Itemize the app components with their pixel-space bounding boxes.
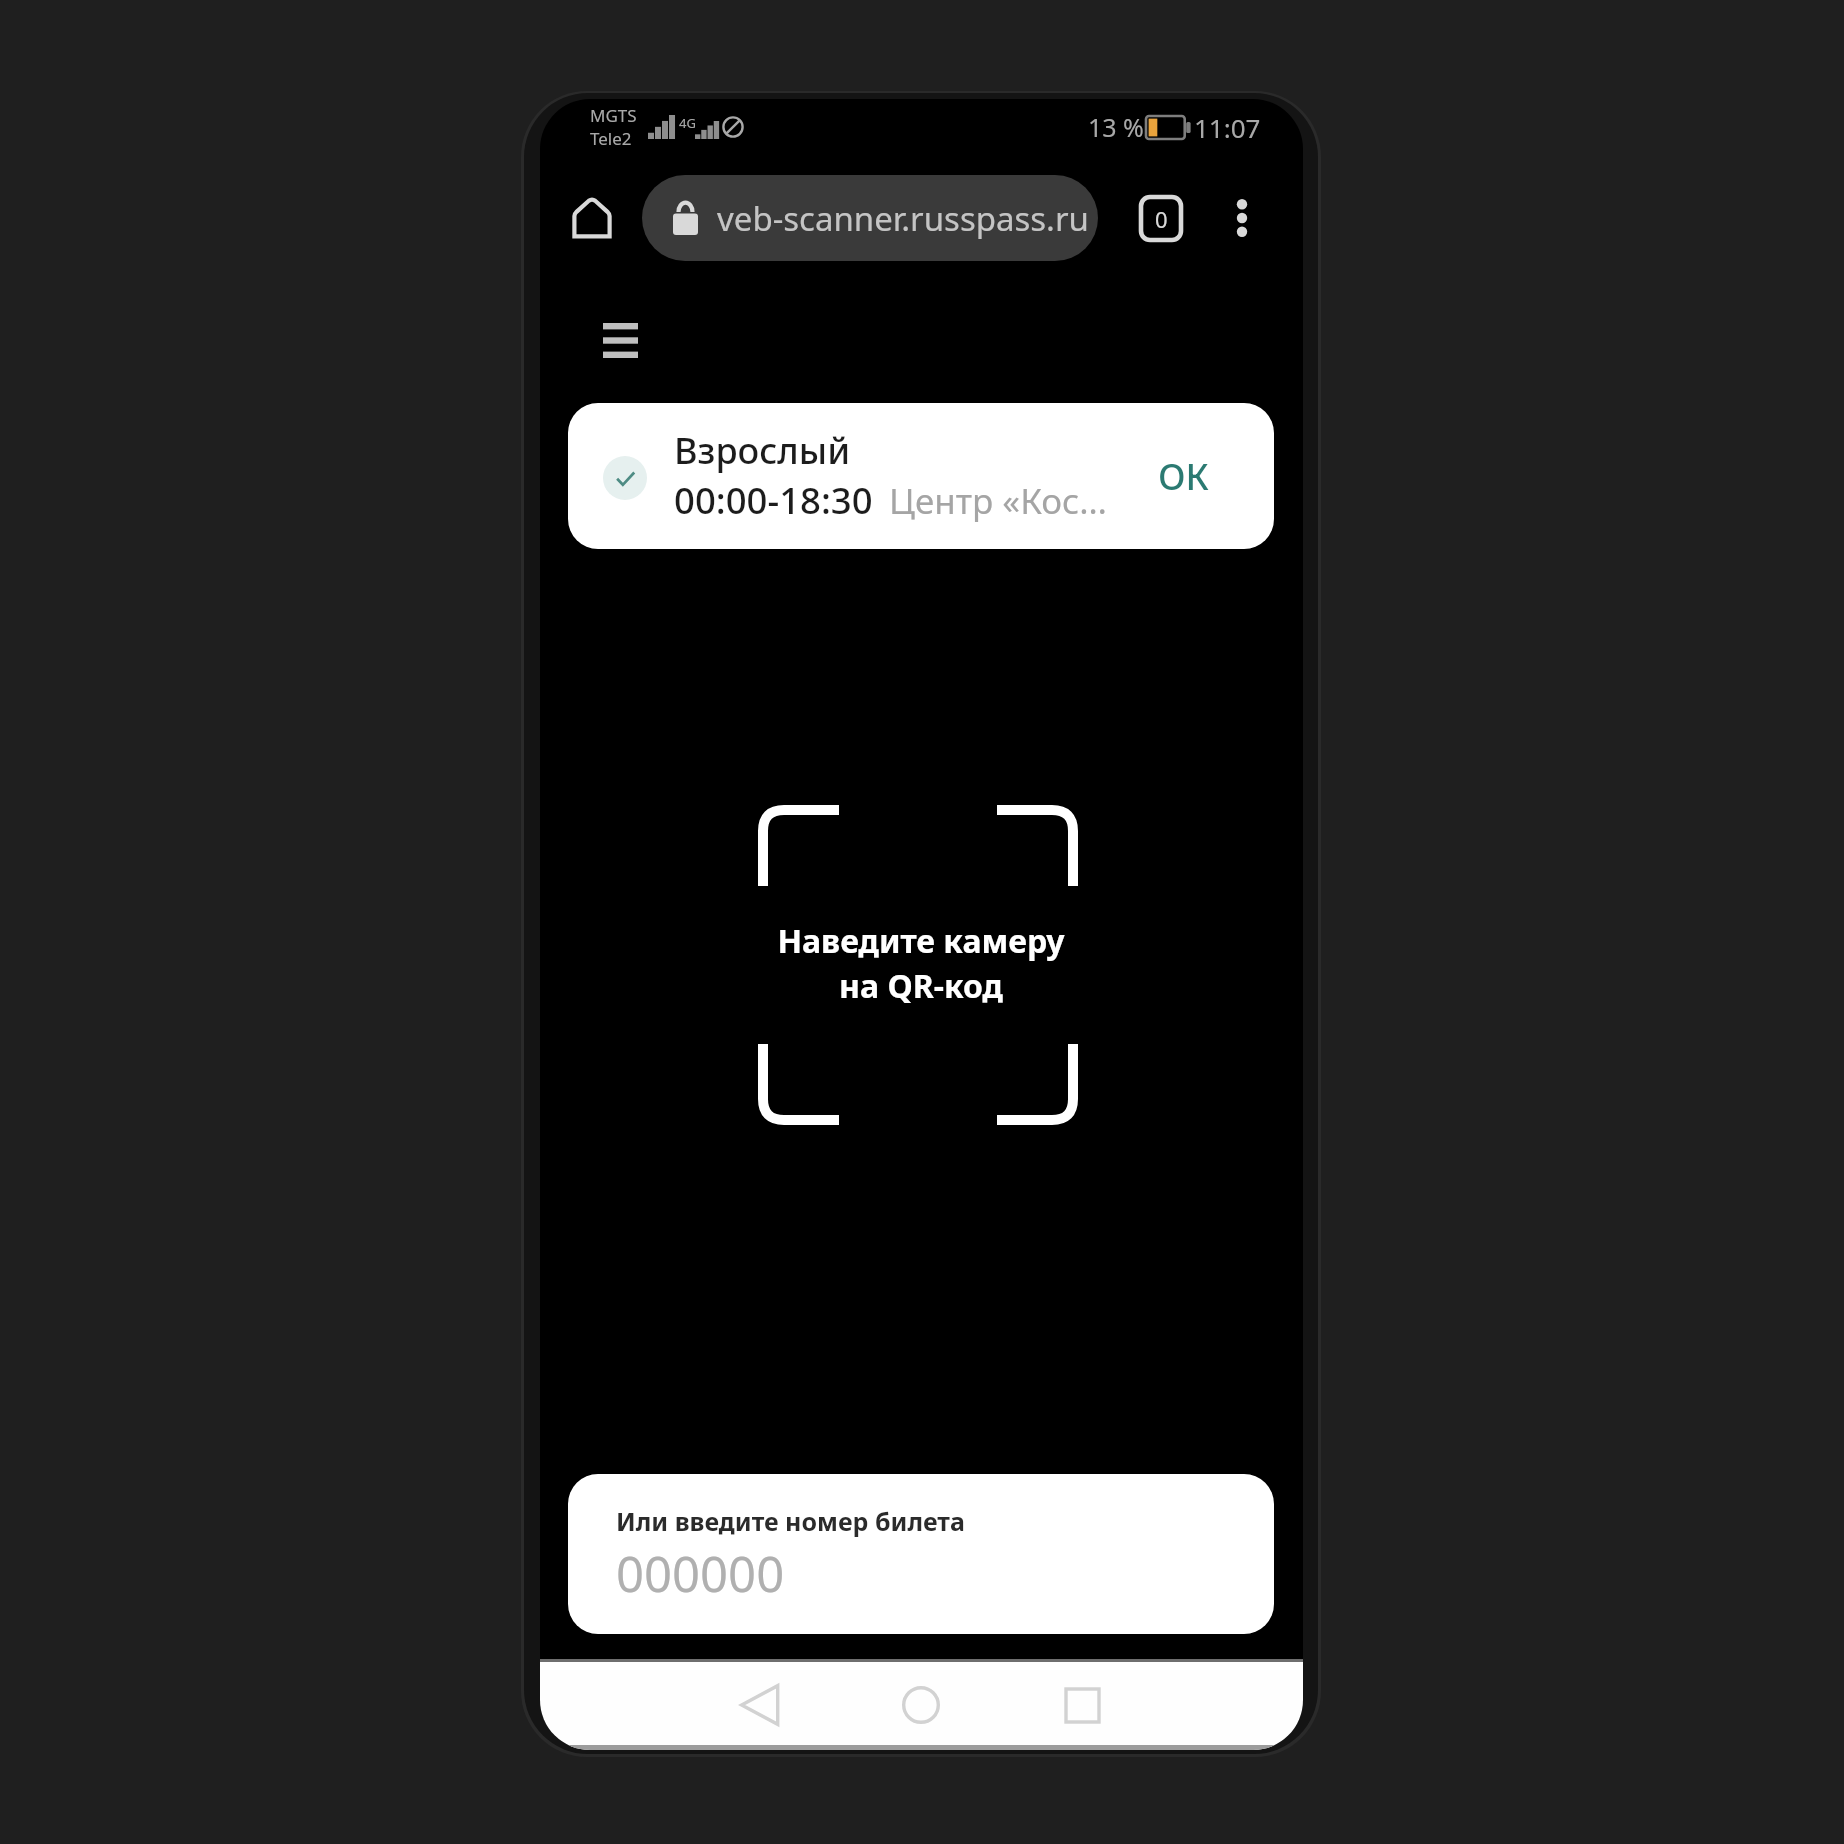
staticText: 4G: [679, 114, 696, 132]
button[interactable]: Recent apps: [1046, 1669, 1118, 1741]
staticText: 13 %: [1088, 110, 1144, 144]
button[interactable]: ОК: [1138, 445, 1228, 507]
staticText: Центр «Кос…: [889, 477, 1108, 525]
button[interactable]: Back: [724, 1669, 796, 1741]
staticText: Взрослый: [674, 426, 851, 475]
staticText: 00:00-18:30: [674, 475, 873, 525]
staticText: Tele2: [590, 127, 632, 150]
button[interactable]: Menu: [585, 305, 655, 375]
staticText: Или введите номер билета: [616, 1504, 965, 1538]
staticText: 0: [1155, 204, 1168, 234]
button[interactable]: Home: [885, 1669, 957, 1741]
staticText: ОК: [1158, 452, 1209, 501]
button[interactable]: Или введите номер билета: [568, 1474, 1274, 1634]
button[interactable]: More options: [1210, 175, 1274, 261]
staticText: Наведите камеру на QR-код: [777, 919, 1065, 1008]
button[interactable]: Взрослый: [568, 403, 1274, 549]
staticText: MGTS: [590, 104, 637, 127]
button[interactable]: Home: [558, 175, 626, 261]
staticText: veb-scanner.russpass.ru: [717, 196, 1089, 241]
button[interactable]: Tabs: [1127, 175, 1195, 261]
staticText: 000000: [616, 1540, 785, 1607]
staticText: 11:07: [1194, 110, 1261, 145]
button[interactable]: veb-scanner.russpass.ru: [642, 175, 1098, 261]
